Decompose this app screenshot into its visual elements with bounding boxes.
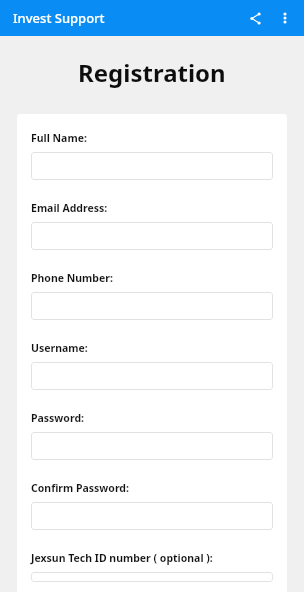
staticText: Registration bbox=[78, 56, 226, 89]
staticText: Password: bbox=[31, 411, 84, 425]
staticText: Username: bbox=[31, 341, 88, 355]
staticText: Phone Number: bbox=[31, 271, 113, 285]
button[interactable] bbox=[31, 152, 273, 180]
button[interactable] bbox=[31, 292, 273, 320]
button[interactable]: Share bbox=[240, 3, 270, 33]
button[interactable] bbox=[31, 572, 273, 582]
button[interactable] bbox=[31, 432, 273, 460]
button[interactable] bbox=[31, 222, 273, 250]
staticText: Confirm Password: bbox=[31, 481, 129, 495]
button[interactable]: More options bbox=[270, 3, 300, 33]
staticText: Jexsun Tech ID number ( optional ): bbox=[31, 551, 213, 565]
staticText: Full Name: bbox=[31, 131, 87, 145]
button[interactable] bbox=[31, 362, 273, 390]
staticText: Email Address: bbox=[31, 201, 108, 215]
button[interactable] bbox=[31, 502, 273, 530]
staticText: Invest Support bbox=[13, 9, 105, 27]
